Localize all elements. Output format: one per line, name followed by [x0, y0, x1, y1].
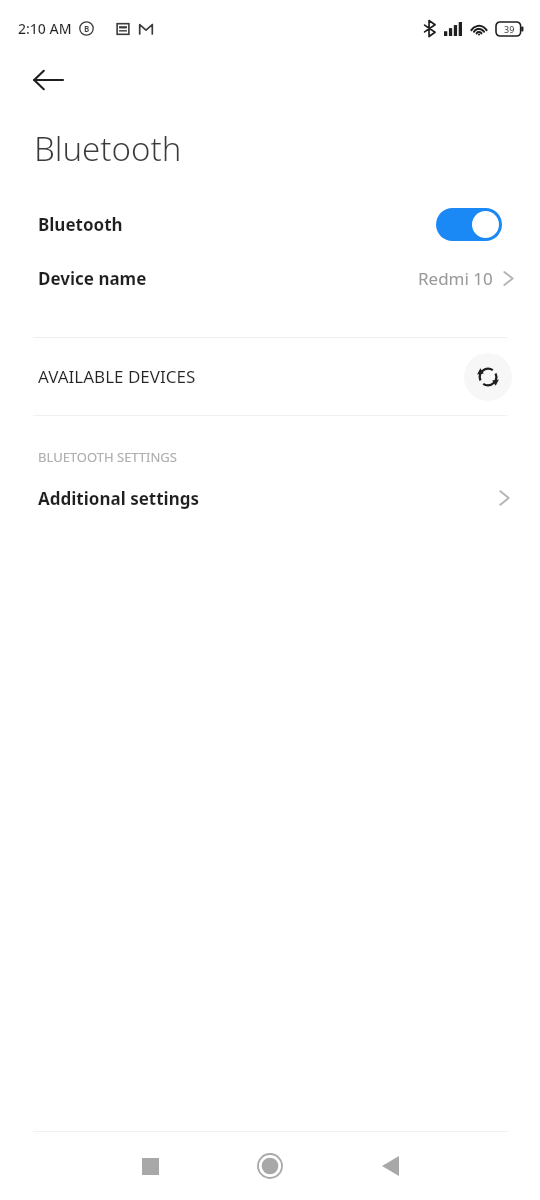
button[interactable]: Home — [248, 1144, 292, 1188]
staticText: 2:10 AM — [18, 19, 72, 38]
staticText: B — [84, 23, 90, 34]
staticText: Redmi 10 — [418, 267, 493, 290]
staticText: Bluetooth — [38, 213, 123, 236]
button[interactable]: Back — [370, 1146, 410, 1186]
staticText: 39 — [504, 23, 515, 35]
button[interactable]: Back — [30, 62, 66, 98]
button[interactable]: Refresh — [464, 353, 512, 401]
button[interactable]: Bluetooth — [0, 197, 540, 251]
staticText: Bluetooth — [34, 126, 182, 171]
other: Bluetooth on — [436, 208, 502, 241]
button[interactable]: Additional settings — [0, 466, 540, 530]
staticText: AVAILABLE DEVICES — [38, 365, 196, 388]
button[interactable]: Device name — [0, 251, 540, 305]
staticText: Additional settings — [38, 487, 199, 510]
button[interactable]: Recents — [130, 1146, 170, 1186]
staticText: BLUETOOTH SETTINGS — [38, 448, 177, 466]
staticText: Device name — [38, 267, 147, 290]
